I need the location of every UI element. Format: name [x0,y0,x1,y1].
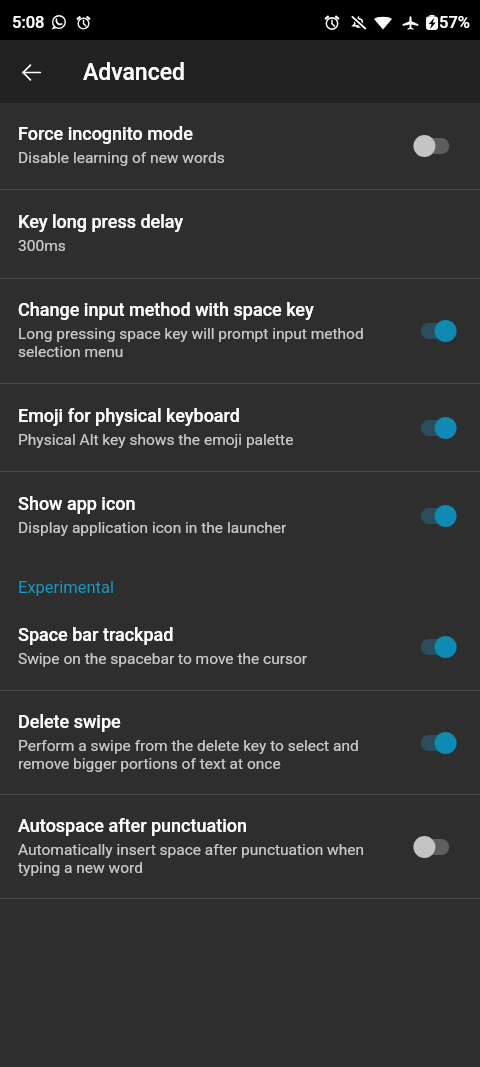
button[interactable]: Emoji for physical keyboard [0,384,480,471]
button[interactable]: Key long press delay [0,190,480,278]
button[interactable]: Toggle on [409,627,461,667]
staticText: Physical Alt key shows the emoji palette [18,431,294,449]
staticText: Force incognito mode [18,123,193,144]
button[interactable]: Force incognito mode [0,103,480,189]
staticText: Automatically insert space after punctua… [18,841,383,877]
button[interactable]: Autospace after punctuation [0,795,480,898]
button[interactable]: Change input method with space key [0,279,480,383]
button[interactable]: Toggle on [409,408,461,448]
staticText: Show app icon [18,493,136,514]
staticText: Display application icon in the launcher [18,519,287,537]
button[interactable]: Show app icon [0,472,480,560]
button[interactable]: Toggle on [409,496,461,536]
staticText: Long pressing space key will prompt inpu… [18,325,383,361]
button[interactable]: Delete swipe [0,691,480,794]
staticText: Delete swipe [18,711,121,732]
staticText: Change input method with space key [18,299,314,320]
staticText: 5:08 [12,13,45,32]
button[interactable]: Toggle on [409,723,461,763]
staticText: Perform a swipe from the delete key to s… [18,737,383,773]
staticText: Space bar trackpad [18,624,174,645]
button[interactable]: Toggle off [409,827,461,867]
staticText: Disable learning of new words [18,149,225,167]
button[interactable]: Toggle off [409,126,461,166]
staticText: Experimental [18,578,114,597]
button[interactable]: Back [7,48,55,96]
staticText: Key long press delay [18,211,184,232]
button[interactable]: Space bar trackpad [0,603,480,690]
staticText: Emoji for physical keyboard [18,405,240,426]
staticText: Swipe on the spacebar to move the cursor [18,650,308,668]
staticText: 57% [439,13,470,32]
staticText: 300ms [18,237,66,255]
staticText: Autospace after punctuation [18,815,248,836]
button[interactable]: Toggle on [409,311,461,351]
staticText: Advanced [83,59,185,86]
